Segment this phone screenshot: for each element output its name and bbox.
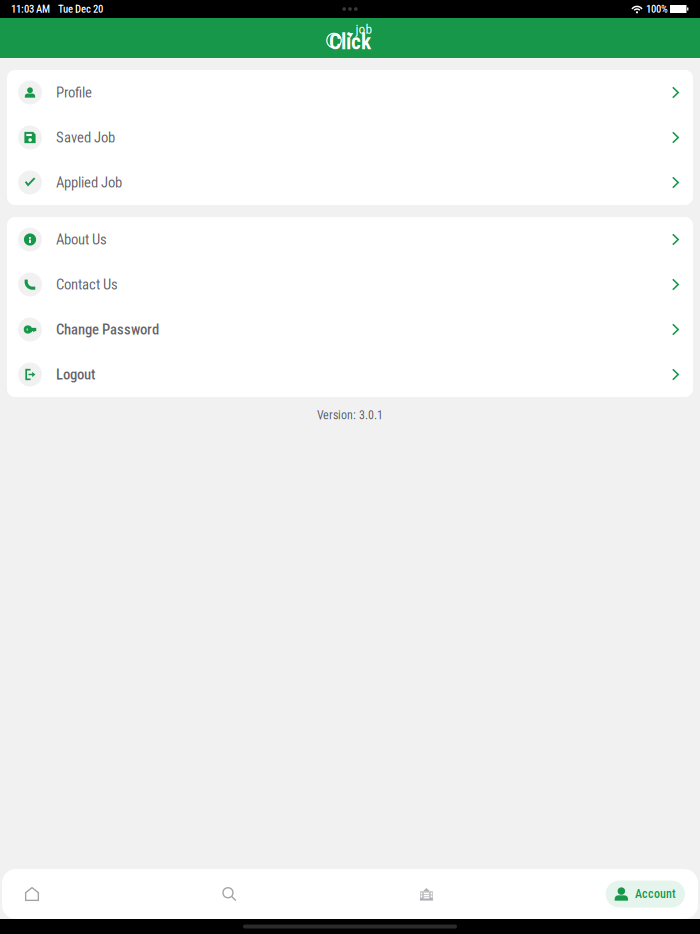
staticText: Contact Us (56, 276, 118, 293)
staticText: Version: 3.0.1 (317, 408, 383, 422)
button[interactable]: Logout (7, 352, 693, 397)
button[interactable]: Contact Us (7, 262, 693, 307)
staticText: Saved Job (56, 129, 115, 146)
button[interactable]: Companies (408, 869, 444, 919)
staticText: Tue Dec 20 (58, 3, 103, 15)
button[interactable]: Account (606, 880, 685, 907)
staticText: Applied Job (56, 174, 122, 191)
staticText: Profile (56, 84, 92, 101)
staticText: About Us (56, 231, 107, 248)
button[interactable]: Search (211, 869, 247, 919)
staticText: Logout (56, 366, 95, 383)
staticText: Change Password (56, 321, 159, 338)
staticText: Click (329, 29, 371, 54)
staticText: 11:03 AM (11, 3, 50, 15)
button[interactable]: Saved Job (7, 115, 693, 160)
staticText: Account (635, 887, 676, 901)
staticText: 100% (646, 3, 668, 15)
button[interactable]: Profile (7, 70, 693, 115)
button[interactable]: Home (14, 869, 50, 919)
button[interactable]: Change Password (7, 307, 693, 352)
button[interactable]: About Us (7, 217, 693, 262)
button[interactable]: Applied Job (7, 160, 693, 205)
staticText: job (355, 21, 372, 37)
